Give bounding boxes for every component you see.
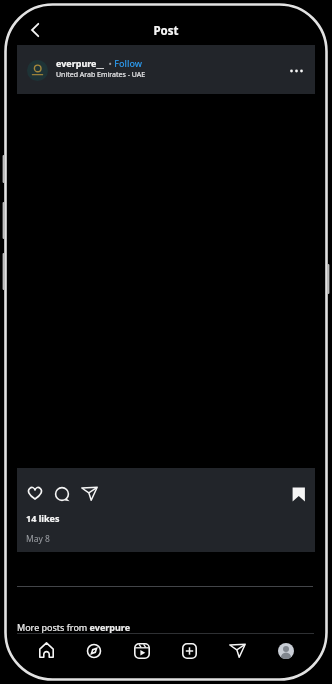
button[interactable]: [229, 643, 246, 658]
staticText: May 8: [26, 533, 50, 545]
button[interactable]: [86, 643, 102, 659]
button[interactable]: everpure__ • Follow: [56, 57, 142, 69]
staticText: Post: [146, 23, 186, 39]
button[interactable]: [27, 60, 48, 81]
button[interactable]: [278, 643, 294, 659]
button[interactable]: [26, 21, 44, 39]
staticText: United Arab Emirates - UAE: [56, 70, 146, 80]
button[interactable]: [27, 486, 43, 501]
button[interactable]: [182, 643, 197, 659]
button[interactable]: [39, 642, 54, 658]
button[interactable]: [134, 643, 150, 659]
staticText: 14 likes: [26, 512, 60, 524]
staticText: More posts from everpure: [17, 621, 131, 633]
button[interactable]: [81, 486, 98, 501]
button[interactable]: [292, 487, 306, 502]
button[interactable]: [289, 67, 305, 75]
button[interactable]: [54, 486, 71, 503]
